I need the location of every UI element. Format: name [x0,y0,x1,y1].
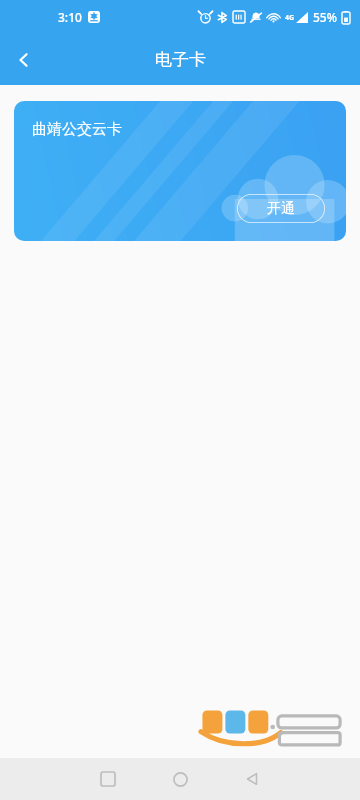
button[interactable]: Home [162,761,198,797]
staticText: 3:10 [58,9,82,25]
staticText: 55% [313,9,337,25]
staticText: 电子卡 [155,49,206,70]
staticText: 4G [285,13,295,23]
button[interactable]: Back [0,36,48,84]
button[interactable]: 开通 [237,194,325,223]
button[interactable]: Back [234,761,270,797]
staticText: 曲靖公交云卡 [32,120,122,139]
staticText: 开通 [267,200,295,218]
button[interactable]: 曲靖公交云卡 [14,101,346,241]
button[interactable]: Recent apps [90,761,126,797]
